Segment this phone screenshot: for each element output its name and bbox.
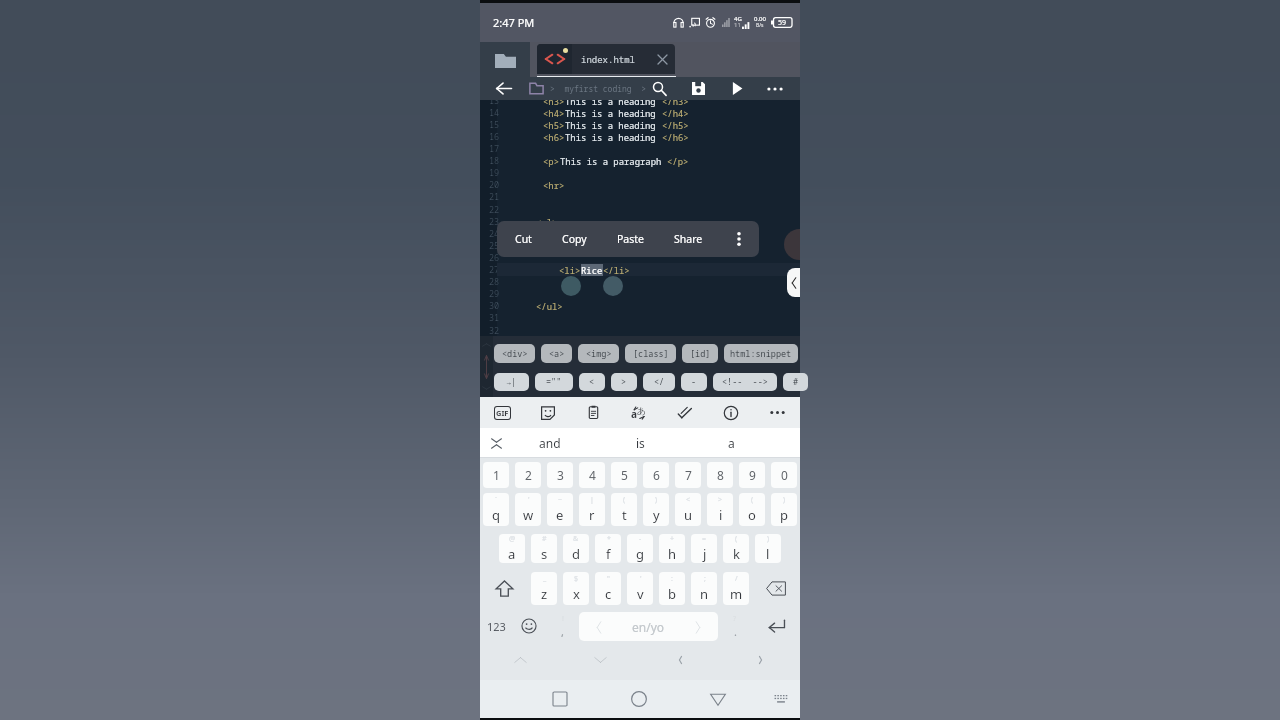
button[interactable]: # bbox=[531, 534, 557, 563]
button[interactable]: Record bbox=[784, 229, 800, 260]
button[interactable]: <div> bbox=[494, 344, 535, 363]
button[interactable]: $ bbox=[563, 572, 589, 605]
staticText: 8 bbox=[717, 467, 724, 483]
button[interactable]: Recents bbox=[540, 680, 580, 718]
button[interactable]: _ bbox=[531, 572, 557, 605]
button[interactable]: <img> bbox=[578, 344, 619, 363]
button[interactable]: Paste bbox=[602, 221, 659, 257]
button[interactable]: Backspace bbox=[752, 572, 800, 605]
staticText: B/s bbox=[756, 22, 764, 29]
button[interactable]: Info bbox=[708, 397, 754, 428]
button[interactable]: Close tab bbox=[651, 48, 673, 70]
button[interactable]: Move left bbox=[640, 651, 720, 669]
button[interactable]: [id] bbox=[682, 344, 718, 363]
button[interactable]: Stickers bbox=[525, 397, 570, 428]
button[interactable]: ( bbox=[739, 493, 765, 526]
button[interactable]: Collapse suggestions bbox=[480, 428, 512, 458]
button[interactable]: ~ bbox=[547, 493, 573, 526]
button[interactable]: <a> bbox=[541, 344, 572, 363]
button[interactable]: * bbox=[595, 534, 621, 563]
button[interactable]: 9 bbox=[739, 462, 765, 488]
button[interactable]: - bbox=[627, 534, 653, 563]
button[interactable]: Cut bbox=[500, 221, 547, 257]
button[interactable]: 1 bbox=[483, 462, 509, 488]
button[interactable]: 0 bbox=[771, 462, 797, 488]
button[interactable]: Save bbox=[679, 77, 717, 100]
staticText: ) bbox=[767, 534, 770, 544]
button[interactable]: Back bbox=[698, 680, 738, 718]
button[interactable]: ) bbox=[771, 493, 797, 526]
button[interactable]: / bbox=[723, 572, 749, 605]
button[interactable]: index.html bbox=[537, 44, 675, 74]
button[interactable]: 4 bbox=[579, 462, 605, 488]
button[interactable]: Back bbox=[486, 77, 522, 100]
button[interactable]: 2 bbox=[515, 462, 541, 488]
button[interactable]: ! bbox=[545, 608, 579, 644]
button[interactable]: 8 bbox=[707, 462, 733, 488]
button[interactable]: GIF bbox=[480, 397, 525, 428]
button[interactable]: Home bbox=[619, 680, 659, 718]
button[interactable]: " bbox=[595, 572, 621, 605]
button[interactable]: ) bbox=[643, 493, 669, 526]
button[interactable]: ' bbox=[627, 572, 653, 605]
button[interactable]: </ bbox=[643, 373, 675, 391]
button[interactable]: | bbox=[579, 493, 605, 526]
button[interactable]: Search bbox=[641, 77, 678, 100]
button[interactable]: @ bbox=[499, 534, 525, 563]
button[interactable]: 123 bbox=[480, 608, 513, 644]
button[interactable]: Translate bbox=[616, 397, 662, 428]
staticText: 29 bbox=[489, 288, 500, 300]
button[interactable]: ; bbox=[691, 572, 717, 605]
staticText: a bbox=[631, 407, 637, 421]
button[interactable]: More bbox=[754, 397, 800, 428]
button[interactable]: Enter bbox=[752, 608, 800, 644]
button[interactable]: Share bbox=[659, 221, 718, 257]
button[interactable]: <!-- --> bbox=[713, 373, 777, 391]
button[interactable]: Hide keyboard bbox=[762, 680, 800, 718]
button[interactable]: Copy bbox=[547, 221, 602, 257]
button[interactable]: Expand panel bbox=[787, 268, 800, 297]
button[interactable]: 7 bbox=[675, 462, 701, 488]
button[interactable]: ( bbox=[723, 534, 749, 563]
button[interactable]: is bbox=[595, 428, 686, 458]
button[interactable]: ( bbox=[611, 493, 637, 526]
button[interactable]: a bbox=[686, 428, 777, 458]
button[interactable]: →| bbox=[494, 373, 529, 391]
button[interactable]: More options bbox=[756, 77, 794, 100]
button[interactable]: : bbox=[659, 572, 685, 605]
button[interactable]: Spell check bbox=[662, 397, 708, 428]
button[interactable]: html:snippet bbox=[724, 344, 798, 363]
button[interactable]: > bbox=[611, 373, 637, 391]
button[interactable]: 5 bbox=[611, 462, 637, 488]
button[interactable]: ="" bbox=[535, 373, 573, 391]
button[interactable]: Run bbox=[718, 77, 756, 100]
button[interactable]: = bbox=[691, 534, 717, 563]
button[interactable]: - bbox=[681, 373, 707, 391]
button[interactable]: > bbox=[707, 493, 733, 526]
button[interactable]: # bbox=[783, 373, 808, 391]
button[interactable]: ' bbox=[515, 493, 541, 526]
staticText: →| bbox=[506, 376, 517, 388]
button[interactable]: Emoji bbox=[513, 608, 545, 644]
button[interactable]: ) bbox=[755, 534, 781, 563]
button[interactable]: More bbox=[718, 221, 759, 257]
button[interactable]: & bbox=[563, 534, 589, 563]
button[interactable]: Shift bbox=[480, 572, 528, 605]
button[interactable]: 3 bbox=[547, 462, 573, 488]
button[interactable]: Files bbox=[491, 42, 519, 77]
staticText: <li> bbox=[559, 264, 581, 276]
button[interactable]: and bbox=[504, 428, 595, 458]
button[interactable]: Clipboard bbox=[570, 397, 616, 428]
button[interactable]: [class] bbox=[625, 344, 676, 363]
button[interactable]: < bbox=[675, 493, 701, 526]
button[interactable]: en/yo bbox=[579, 612, 718, 641]
button[interactable]: + bbox=[659, 534, 685, 563]
button[interactable]: ` bbox=[483, 493, 509, 526]
button[interactable]: 6 bbox=[643, 462, 669, 488]
button[interactable]: Move right bbox=[720, 651, 800, 669]
button[interactable]: Toggle snippets bbox=[480, 336, 493, 397]
button[interactable]: < bbox=[579, 373, 605, 391]
